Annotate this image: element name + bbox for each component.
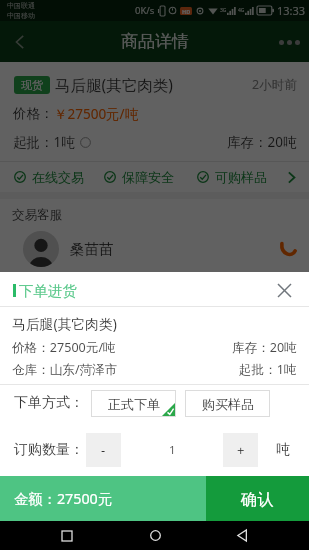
staticText: 库存：20吨 [232, 339, 297, 356]
staticText: + [237, 441, 245, 459]
staticText: 3G [220, 7, 227, 14]
staticText: 0K/s [135, 4, 155, 17]
staticText: ￥27500元/吨 [54, 105, 139, 123]
staticText: 仓库：山东/菏泽市 [12, 361, 118, 378]
staticText: 下单方式： [14, 394, 84, 412]
staticText: 马后腿(其它肉类) [55, 74, 173, 95]
button[interactable]: Back [222, 521, 262, 550]
staticText: 1 [169, 442, 176, 458]
staticText: 中国移动 [7, 11, 35, 20]
button[interactable]: More options [269, 22, 309, 62]
staticText: 价格：27500元/吨 [12, 339, 116, 356]
staticText: 现货 [21, 78, 43, 92]
staticText: 订购数量： [14, 441, 84, 459]
staticText: 马后腿(其它肉类) [12, 314, 117, 333]
button[interactable]: + [223, 433, 258, 467]
staticText: HD [182, 8, 191, 15]
staticText: - [101, 441, 106, 459]
button[interactable]: - [86, 433, 121, 467]
button[interactable]: 购买样品 [185, 390, 270, 417]
staticText: 保障安全 [122, 169, 174, 185]
staticText: 购买样品 [202, 396, 254, 412]
staticText: 4G [238, 7, 245, 14]
staticText: 桑苗苗 [70, 240, 114, 258]
staticText: 金额：27500元 [14, 489, 113, 509]
staticText: 起批：1吨 [13, 133, 75, 151]
staticText: 中国联通 [7, 1, 35, 10]
button[interactable]: 正式下单 [91, 390, 176, 417]
staticText: 正式下单 [108, 396, 160, 412]
staticText: 价格： [13, 105, 54, 122]
staticText: 13:33 [277, 3, 306, 18]
button[interactable]: 金额：27500元 [0, 476, 206, 521]
staticText: 2小时前 [252, 76, 297, 93]
button[interactable]: Recents [47, 521, 87, 550]
button[interactable]: 确认 [206, 476, 309, 521]
staticText: 商品详情 [121, 31, 189, 52]
button[interactable]: Close [267, 275, 301, 306]
staticText: 起批：1吨 [239, 361, 297, 378]
button[interactable]: Back [0, 22, 40, 62]
staticText: 在线交易 [32, 169, 84, 185]
staticText: 确认 [241, 489, 274, 509]
staticText: 下单进货 [19, 282, 77, 300]
staticText: 吨 [276, 441, 290, 459]
staticText: 交易客服 [12, 207, 62, 223]
staticText: 可购样品 [215, 169, 267, 185]
staticText: 库存：20吨 [227, 133, 297, 151]
button[interactable]: Home [135, 521, 175, 550]
